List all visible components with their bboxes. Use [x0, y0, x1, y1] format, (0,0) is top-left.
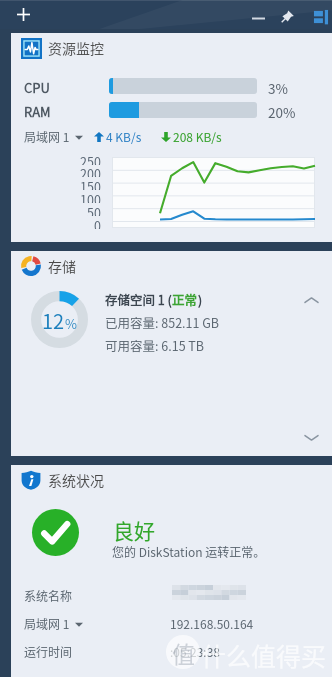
button[interactable]: Add — [12, 3, 35, 26]
button[interactable]: Minimize — [246, 4, 270, 28]
staticText: 150 — [80, 177, 101, 190]
staticText: 可用容量: 6.15 TB — [105, 336, 205, 354]
staticText: 0 — [94, 216, 101, 229]
staticText: 什么值得买 — [201, 637, 327, 673]
staticText: 12 — [42, 306, 65, 335]
button[interactable]: Expand — [300, 426, 322, 448]
button[interactable]: Layout — [308, 4, 332, 28]
staticText: RAM — [24, 102, 51, 118]
staticText: 100 — [80, 190, 101, 203]
button[interactable]: 存储 — [11, 251, 332, 280]
staticText: 存储 — [48, 256, 76, 276]
staticText: 您的 DiskStation 运转正常。 — [112, 543, 266, 560]
staticText: 值 — [172, 636, 195, 669]
staticText: 系统状况 — [48, 470, 104, 490]
button[interactable]: 资源监控 — [11, 33, 332, 63]
staticText: 存储空间 1 ( — [105, 290, 172, 308]
staticText: 系统名称 — [24, 587, 73, 604]
staticText: 局域网 1 — [24, 615, 70, 632]
staticText: 资源监控 — [48, 38, 104, 58]
staticText: 3% — [268, 78, 288, 94]
staticText: 局域网 1 — [24, 128, 70, 145]
button[interactable]: Pin — [276, 4, 300, 28]
button[interactable]: 局域网 1 — [24, 128, 83, 145]
staticText: 4 KB/s — [106, 128, 142, 145]
staticText: 250 — [80, 152, 101, 165]
staticText: 正常 — [172, 290, 198, 308]
staticText: 200 — [80, 164, 101, 177]
staticText: 运行时间 — [24, 643, 73, 660]
staticText: 50 — [87, 203, 101, 216]
button[interactable]: Collapse — [300, 289, 322, 311]
staticText: 良好 — [113, 515, 155, 545]
button[interactable]: 系统状况 — [11, 465, 332, 494]
staticText: % — [65, 314, 77, 333]
staticText: :05:23:38 — [170, 643, 220, 660]
staticText: 208 KB/s — [173, 128, 222, 145]
staticText: 已用容量: 852.11 GB — [105, 313, 220, 331]
staticText: CPU — [24, 78, 50, 94]
staticText: ) — [198, 290, 203, 308]
staticText: 20% — [268, 102, 296, 118]
staticText: 192.168.50.164 — [170, 615, 254, 632]
